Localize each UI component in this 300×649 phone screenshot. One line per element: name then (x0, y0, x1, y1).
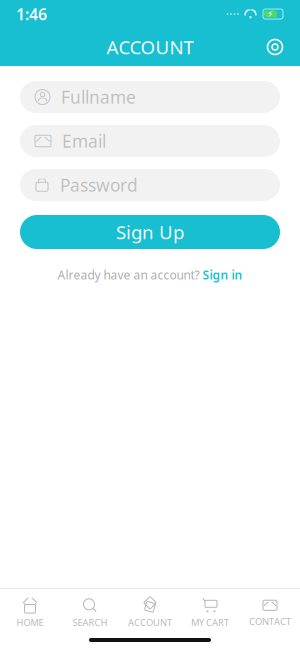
button[interactable]: CONTACT (240, 593, 300, 633)
button[interactable]: MY CART (180, 592, 240, 634)
staticText: HOME (16, 616, 43, 629)
staticText: SEARCH (72, 616, 107, 629)
staticText: CONTACT (249, 615, 291, 628)
button[interactable]: Fullname (20, 81, 280, 113)
staticText: Email (62, 129, 106, 152)
staticText: Fullname (61, 85, 136, 108)
button[interactable]: Settings (264, 36, 286, 58)
button[interactable]: Sign Up (20, 215, 280, 249)
button[interactable]: ACCOUNT (120, 592, 180, 634)
staticText: Sign Up (116, 220, 184, 244)
staticText: ACCOUNT (128, 616, 172, 629)
button[interactable]: HOME (0, 592, 60, 634)
button[interactable]: SEARCH (60, 592, 120, 634)
button[interactable]: Email (20, 125, 280, 157)
staticText: ACCOUNT (106, 35, 193, 59)
staticText: Sign in (202, 267, 242, 283)
button[interactable]: Password (20, 169, 280, 201)
staticText: 1:46 (16, 3, 47, 25)
staticText: MY CART (191, 616, 229, 629)
staticText: Already have an account? (57, 267, 199, 283)
staticText: Password (60, 173, 138, 196)
button[interactable]: Already have an account? (49, 263, 250, 287)
staticText: ⚡︎ (267, 9, 274, 19)
